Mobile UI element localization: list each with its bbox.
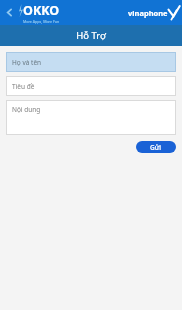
staticText: vinaphone <box>128 8 168 18</box>
staticText: Nội dung <box>12 105 41 114</box>
staticText: OKKO <box>23 2 60 19</box>
button[interactable]: Gửi <box>136 141 176 153</box>
staticText: Hỗ Trợ <box>76 29 106 42</box>
button[interactable]: Họ và tên <box>6 52 176 72</box>
button[interactable]: Nội dung <box>6 100 176 135</box>
staticText: Gửi <box>150 143 162 152</box>
button[interactable]: Tiêu đề <box>6 76 176 96</box>
button[interactable]: Back <box>0 0 18 25</box>
staticText: More Apps, More Fun <box>23 19 60 24</box>
staticText: Họ và tên <box>12 58 42 67</box>
staticText: Tiêu đề <box>12 82 35 91</box>
